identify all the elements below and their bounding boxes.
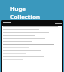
staticText: Collection (10, 13, 40, 21)
button[interactable]: Huge (10, 5, 64, 21)
button[interactable] (1, 20, 63, 26)
staticText: Huge (10, 5, 26, 13)
